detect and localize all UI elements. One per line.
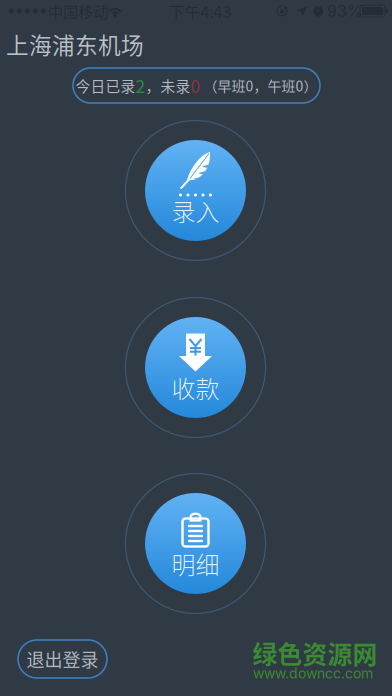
button[interactable]: 录入 (124, 119, 266, 261)
staticText: 绿色资源网 (252, 635, 377, 671)
staticText: 0 (190, 73, 200, 98)
button[interactable]: 退出登录 (18, 640, 107, 678)
staticText: 明细 (171, 546, 219, 581)
staticText: 上海浦东机场 (6, 28, 144, 60)
staticText: 录入 (171, 193, 219, 228)
button[interactable]: 明细 (124, 472, 266, 614)
button[interactable]: 今日已录 (73, 68, 320, 103)
staticText: 收款 (171, 370, 219, 405)
staticText: 下午4:43 (168, 0, 231, 23)
staticText: 2 (135, 73, 145, 98)
staticText: 退出登录 (26, 646, 98, 672)
staticText: 今日已录 (75, 75, 135, 96)
staticText: ，未录 (145, 75, 190, 96)
button[interactable]: 收款 (124, 296, 266, 438)
staticText: （早班0，午班0） (203, 75, 317, 96)
staticText: www.downcc.com (253, 665, 373, 682)
staticText: 中国移动 (48, 0, 108, 22)
staticText: 93% (327, 1, 363, 21)
